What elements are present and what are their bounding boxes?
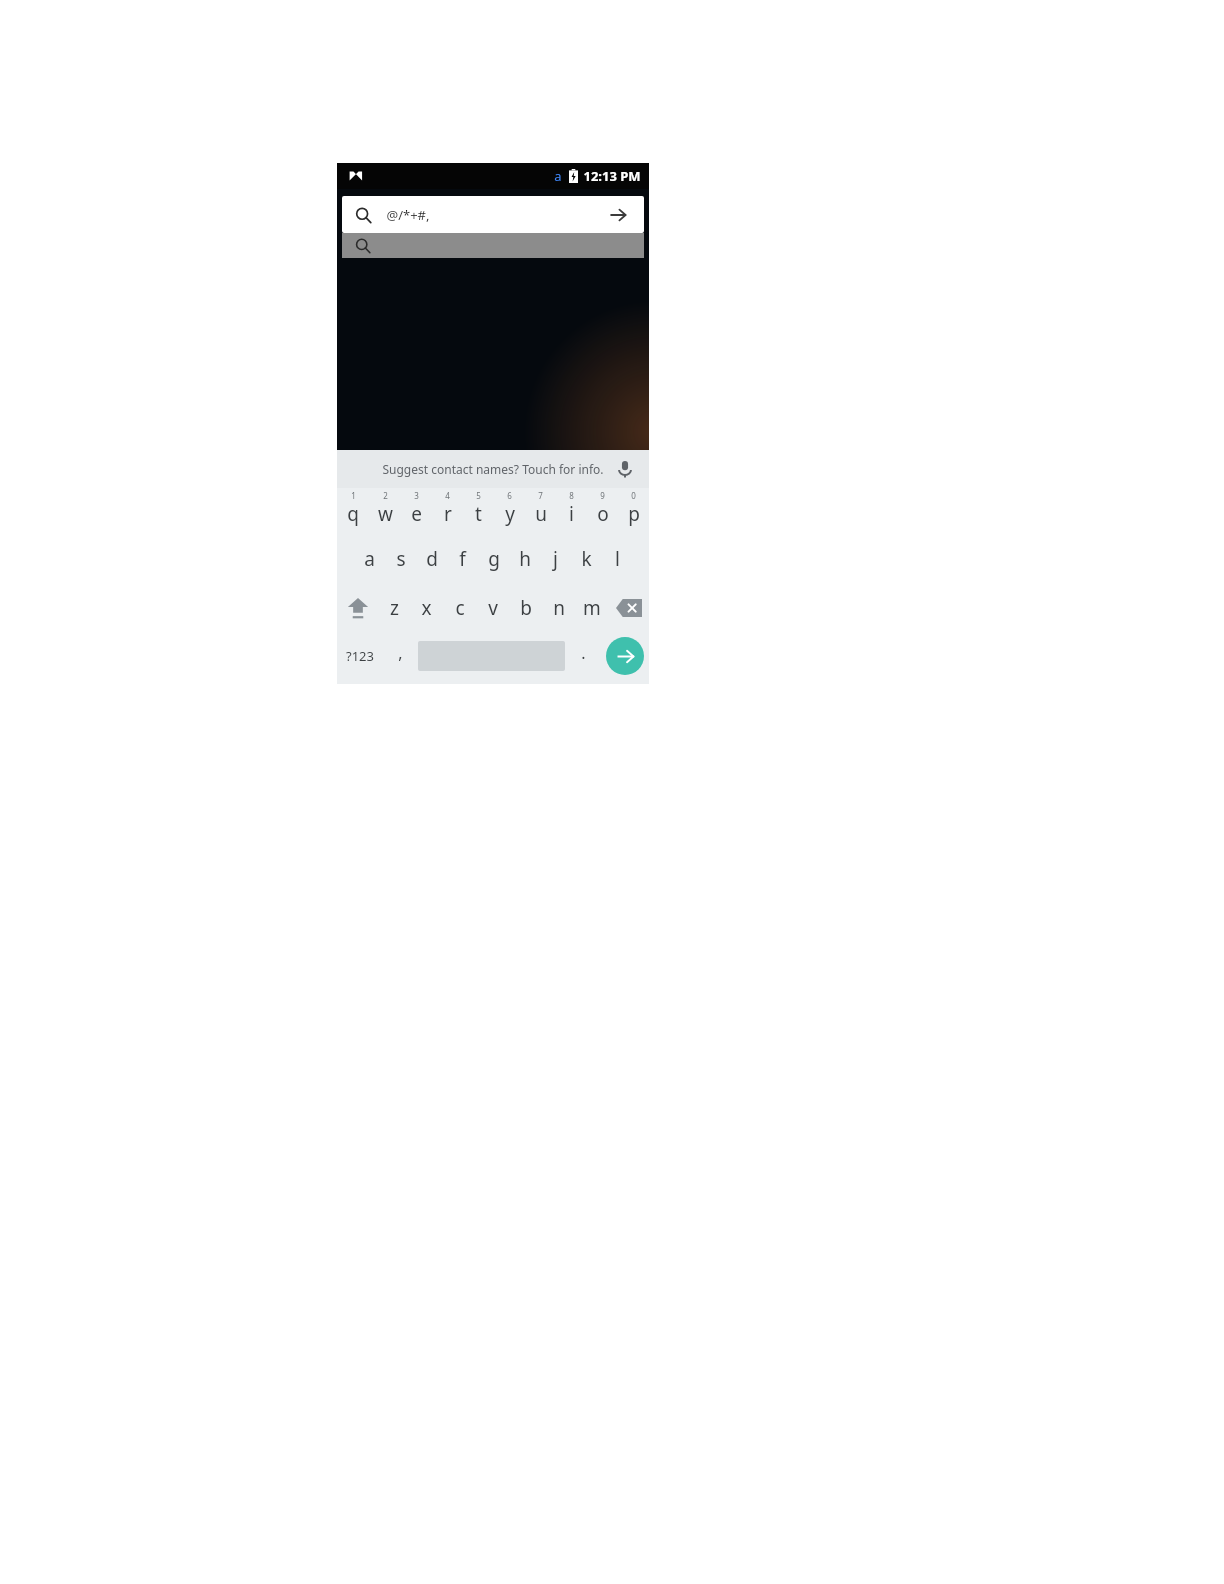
button[interactable]: d bbox=[416, 534, 447, 583]
staticText: 2 bbox=[383, 490, 388, 501]
staticText: s bbox=[396, 546, 406, 572]
staticText: l bbox=[615, 546, 620, 572]
button[interactable]: j bbox=[540, 534, 571, 583]
staticText: h bbox=[519, 546, 531, 572]
staticText: y bbox=[505, 501, 515, 527]
staticText: v bbox=[488, 595, 498, 621]
button[interactable]: 8 bbox=[556, 488, 587, 534]
button[interactable]: 3 bbox=[401, 488, 432, 534]
staticText: 3 bbox=[414, 490, 419, 501]
button[interactable]: Backspace bbox=[608, 583, 649, 632]
button[interactable]: 4 bbox=[432, 488, 463, 534]
staticText: i bbox=[569, 501, 574, 527]
staticText: 6 bbox=[507, 490, 512, 501]
staticText: o bbox=[597, 501, 609, 527]
staticText: 7 bbox=[538, 490, 543, 501]
staticText: 9 bbox=[600, 490, 605, 501]
staticText: e bbox=[411, 501, 422, 527]
button[interactable]: Voice input bbox=[613, 457, 637, 481]
button[interactable]: Shift bbox=[337, 583, 378, 632]
staticText: 1 bbox=[351, 490, 356, 501]
button[interactable]: n bbox=[542, 583, 575, 632]
staticText: b bbox=[520, 595, 532, 621]
staticText: 8 bbox=[569, 490, 574, 501]
button[interactable]: . bbox=[565, 632, 601, 680]
staticText: j bbox=[553, 546, 558, 572]
button[interactable]: l bbox=[602, 534, 633, 583]
button[interactable]: 1 bbox=[337, 488, 369, 534]
staticText: 4 bbox=[445, 490, 450, 501]
staticText: . bbox=[581, 642, 586, 664]
staticText: @/*+#, bbox=[386, 206, 430, 224]
staticText: x bbox=[421, 595, 432, 621]
button[interactable]: Search bbox=[605, 202, 631, 228]
staticText: r bbox=[444, 501, 452, 527]
staticText: a bbox=[554, 167, 562, 185]
button[interactable]: 0 bbox=[618, 488, 649, 534]
button[interactable]: s bbox=[385, 534, 416, 583]
button[interactable]: 7 bbox=[525, 488, 556, 534]
staticText: 12:13 PM bbox=[583, 167, 641, 185]
button[interactable]: f bbox=[447, 534, 478, 583]
staticText: t bbox=[475, 501, 482, 527]
staticText: p bbox=[628, 501, 640, 527]
staticText: 5 bbox=[476, 490, 481, 501]
button[interactable]: 6 bbox=[494, 488, 525, 534]
button[interactable] bbox=[342, 233, 644, 258]
button[interactable]: Suggest contact names? Touch for info. bbox=[337, 450, 649, 488]
staticText: , bbox=[398, 642, 403, 664]
button[interactable]: g bbox=[478, 534, 509, 583]
button[interactable]: , bbox=[383, 632, 418, 680]
staticText: c bbox=[455, 595, 465, 621]
button[interactable]: 2 bbox=[369, 488, 401, 534]
staticText: k bbox=[581, 546, 592, 572]
button[interactable]: m bbox=[575, 583, 608, 632]
staticText: Suggest contact names? Touch for info. bbox=[382, 461, 604, 477]
button[interactable]: v bbox=[476, 583, 509, 632]
button[interactable]: z bbox=[378, 583, 410, 632]
button[interactable]: Enter bbox=[606, 637, 644, 675]
staticText: g bbox=[488, 546, 500, 572]
button[interactable]: a bbox=[353, 534, 385, 583]
button[interactable]: c bbox=[443, 583, 476, 632]
staticText: w bbox=[378, 501, 393, 527]
button[interactable]: k bbox=[571, 534, 602, 583]
button[interactable]: @/*+#, bbox=[342, 196, 644, 233]
button[interactable]: ?123 bbox=[337, 632, 383, 680]
staticText: u bbox=[535, 501, 547, 527]
staticText: a bbox=[364, 546, 375, 572]
staticText: n bbox=[553, 595, 565, 621]
button[interactable]: b bbox=[509, 583, 542, 632]
staticText: z bbox=[390, 595, 399, 621]
staticText: q bbox=[347, 501, 359, 527]
button[interactable]: 9 bbox=[587, 488, 618, 534]
staticText: d bbox=[426, 546, 438, 572]
staticText: f bbox=[459, 546, 466, 572]
button[interactable]: h bbox=[509, 534, 540, 583]
staticText: ?123 bbox=[346, 647, 374, 665]
staticText: 0 bbox=[631, 490, 636, 501]
staticText: m bbox=[583, 595, 601, 621]
button[interactable]: x bbox=[410, 583, 443, 632]
button[interactable]: 5 bbox=[463, 488, 494, 534]
